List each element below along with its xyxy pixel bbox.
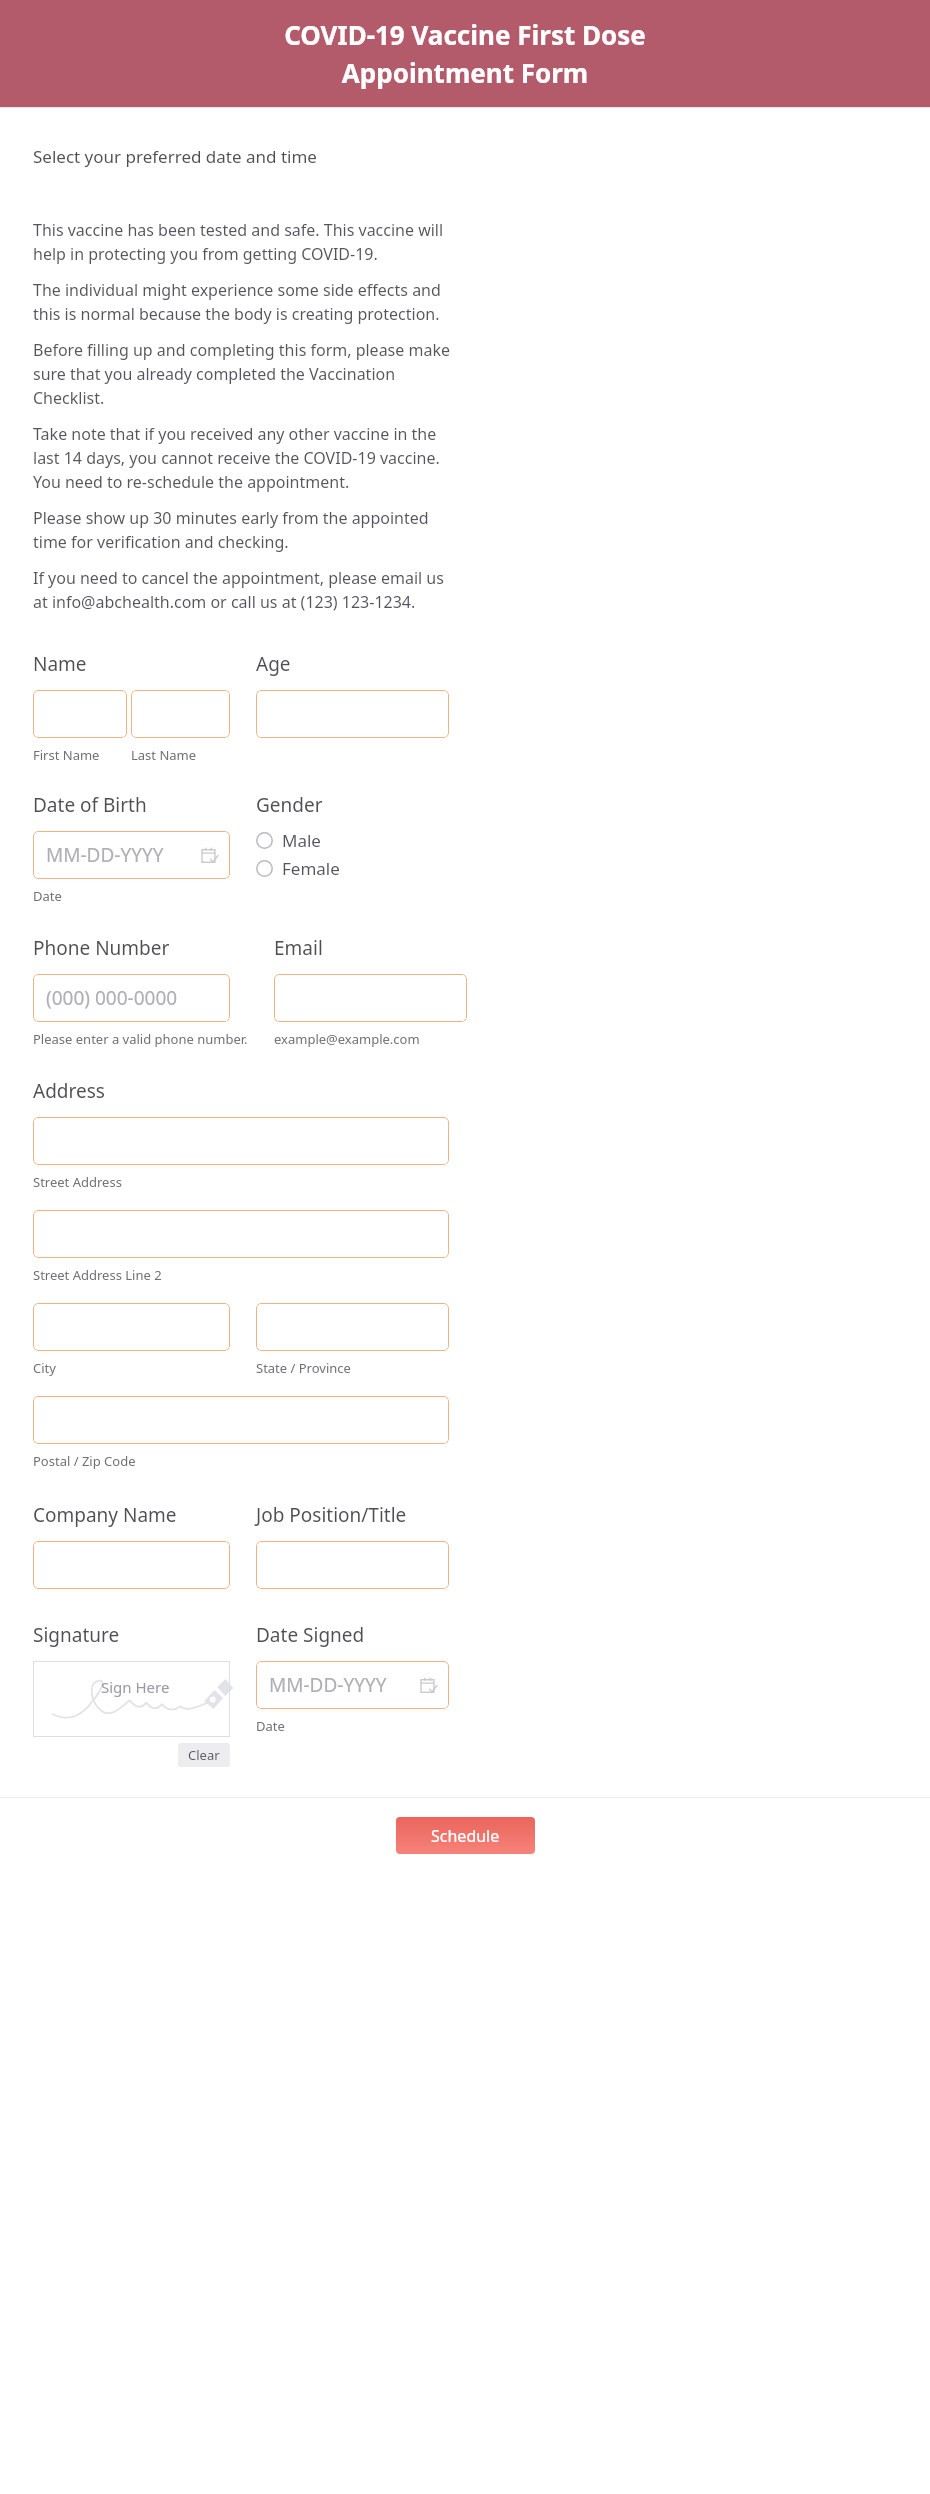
staticText: If you need to cancel the appointment, p… <box>33 567 457 613</box>
staticText: COVID-19 Vaccine First Dose Appointment … <box>284 17 646 90</box>
button[interactable]: MM-DD-YYYY <box>33 831 230 879</box>
staticText: Schedule <box>431 1825 500 1847</box>
staticText: Last Name <box>131 746 197 764</box>
staticText: Company Name <box>33 1502 177 1528</box>
button[interactable] <box>274 974 467 1022</box>
staticText: Clear <box>188 1746 220 1764</box>
button[interactable] <box>33 690 127 738</box>
staticText: Date Signed <box>256 1622 365 1648</box>
button[interactable] <box>33 1396 449 1444</box>
button[interactable] <box>256 690 449 738</box>
button[interactable]: Select your preferred date and time <box>33 145 317 168</box>
button[interactable] <box>256 1541 449 1589</box>
staticText: Street Address Line 2 <box>33 1266 162 1284</box>
staticText: (000) 000-0000 <box>46 985 178 1011</box>
staticText: Age <box>256 651 291 677</box>
button[interactable]: Signature pad, sign here <box>33 1661 230 1737</box>
staticText: Male <box>282 829 321 852</box>
staticText: Street Address <box>33 1173 122 1191</box>
button[interactable]: Male <box>256 828 321 852</box>
staticText: Gender <box>256 792 323 818</box>
staticText: MM-DD-YYYY <box>46 842 164 868</box>
button[interactable]: Female <box>256 856 340 880</box>
staticText: City <box>33 1359 56 1377</box>
staticText: Sign Here <box>101 1677 170 1697</box>
button[interactable]: Clear <box>178 1743 230 1767</box>
staticText: Female <box>282 857 340 880</box>
staticText: Job Position/Title <box>256 1502 407 1528</box>
staticText: Date of Birth <box>33 792 147 818</box>
staticText: State / Province <box>256 1359 351 1377</box>
staticText: Please enter a valid phone number. <box>33 1030 248 1048</box>
staticText: example@example.com <box>274 1030 420 1048</box>
staticText: Please show up 30 minutes early from the… <box>33 507 457 553</box>
staticText: Address <box>33 1078 105 1104</box>
staticText: Name <box>33 651 87 677</box>
staticText: Email <box>274 935 323 961</box>
staticText: Before filling up and completing this fo… <box>33 339 457 409</box>
button[interactable] <box>33 1541 230 1589</box>
button[interactable] <box>256 1303 449 1351</box>
staticText: Postal / Zip Code <box>33 1452 136 1470</box>
staticText: Date <box>256 1717 285 1735</box>
staticText: Signature <box>33 1622 120 1648</box>
staticText: Take note that if you received any other… <box>33 423 457 493</box>
button[interactable]: (000) 000-0000 <box>33 974 230 1022</box>
button[interactable] <box>33 1210 449 1258</box>
button[interactable] <box>33 1303 230 1351</box>
button[interactable] <box>131 690 230 738</box>
staticText: The individual might experience some sid… <box>33 279 457 325</box>
staticText: MM-DD-YYYY <box>269 1672 387 1698</box>
button[interactable]: Schedule <box>396 1817 535 1854</box>
staticText: Phone Number <box>33 935 170 961</box>
staticText: This vaccine has been tested and safe. T… <box>33 219 457 265</box>
staticText: Date <box>33 887 62 905</box>
staticText: First Name <box>33 746 100 764</box>
button[interactable]: MM-DD-YYYY <box>256 1661 449 1709</box>
button[interactable] <box>33 1117 449 1165</box>
